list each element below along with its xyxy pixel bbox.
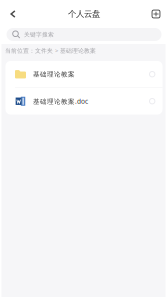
staticText: 当前位置：文件夹 > 基础理论教案 xyxy=(5,47,96,54)
staticText: 关键字搜索 xyxy=(24,31,54,38)
button[interactable]: Add xyxy=(144,1,168,27)
button[interactable]: 基础理论教案.doc xyxy=(5,88,162,114)
button[interactable]: 基础理论教案 xyxy=(5,61,162,87)
staticText: 基础理论教案 xyxy=(33,70,75,78)
button[interactable]: 关键字搜索 xyxy=(6,28,161,41)
staticText: 基础理论教案.doc xyxy=(33,97,88,106)
staticText: 个人云盘 xyxy=(68,9,100,19)
button[interactable]: Back xyxy=(0,1,26,27)
